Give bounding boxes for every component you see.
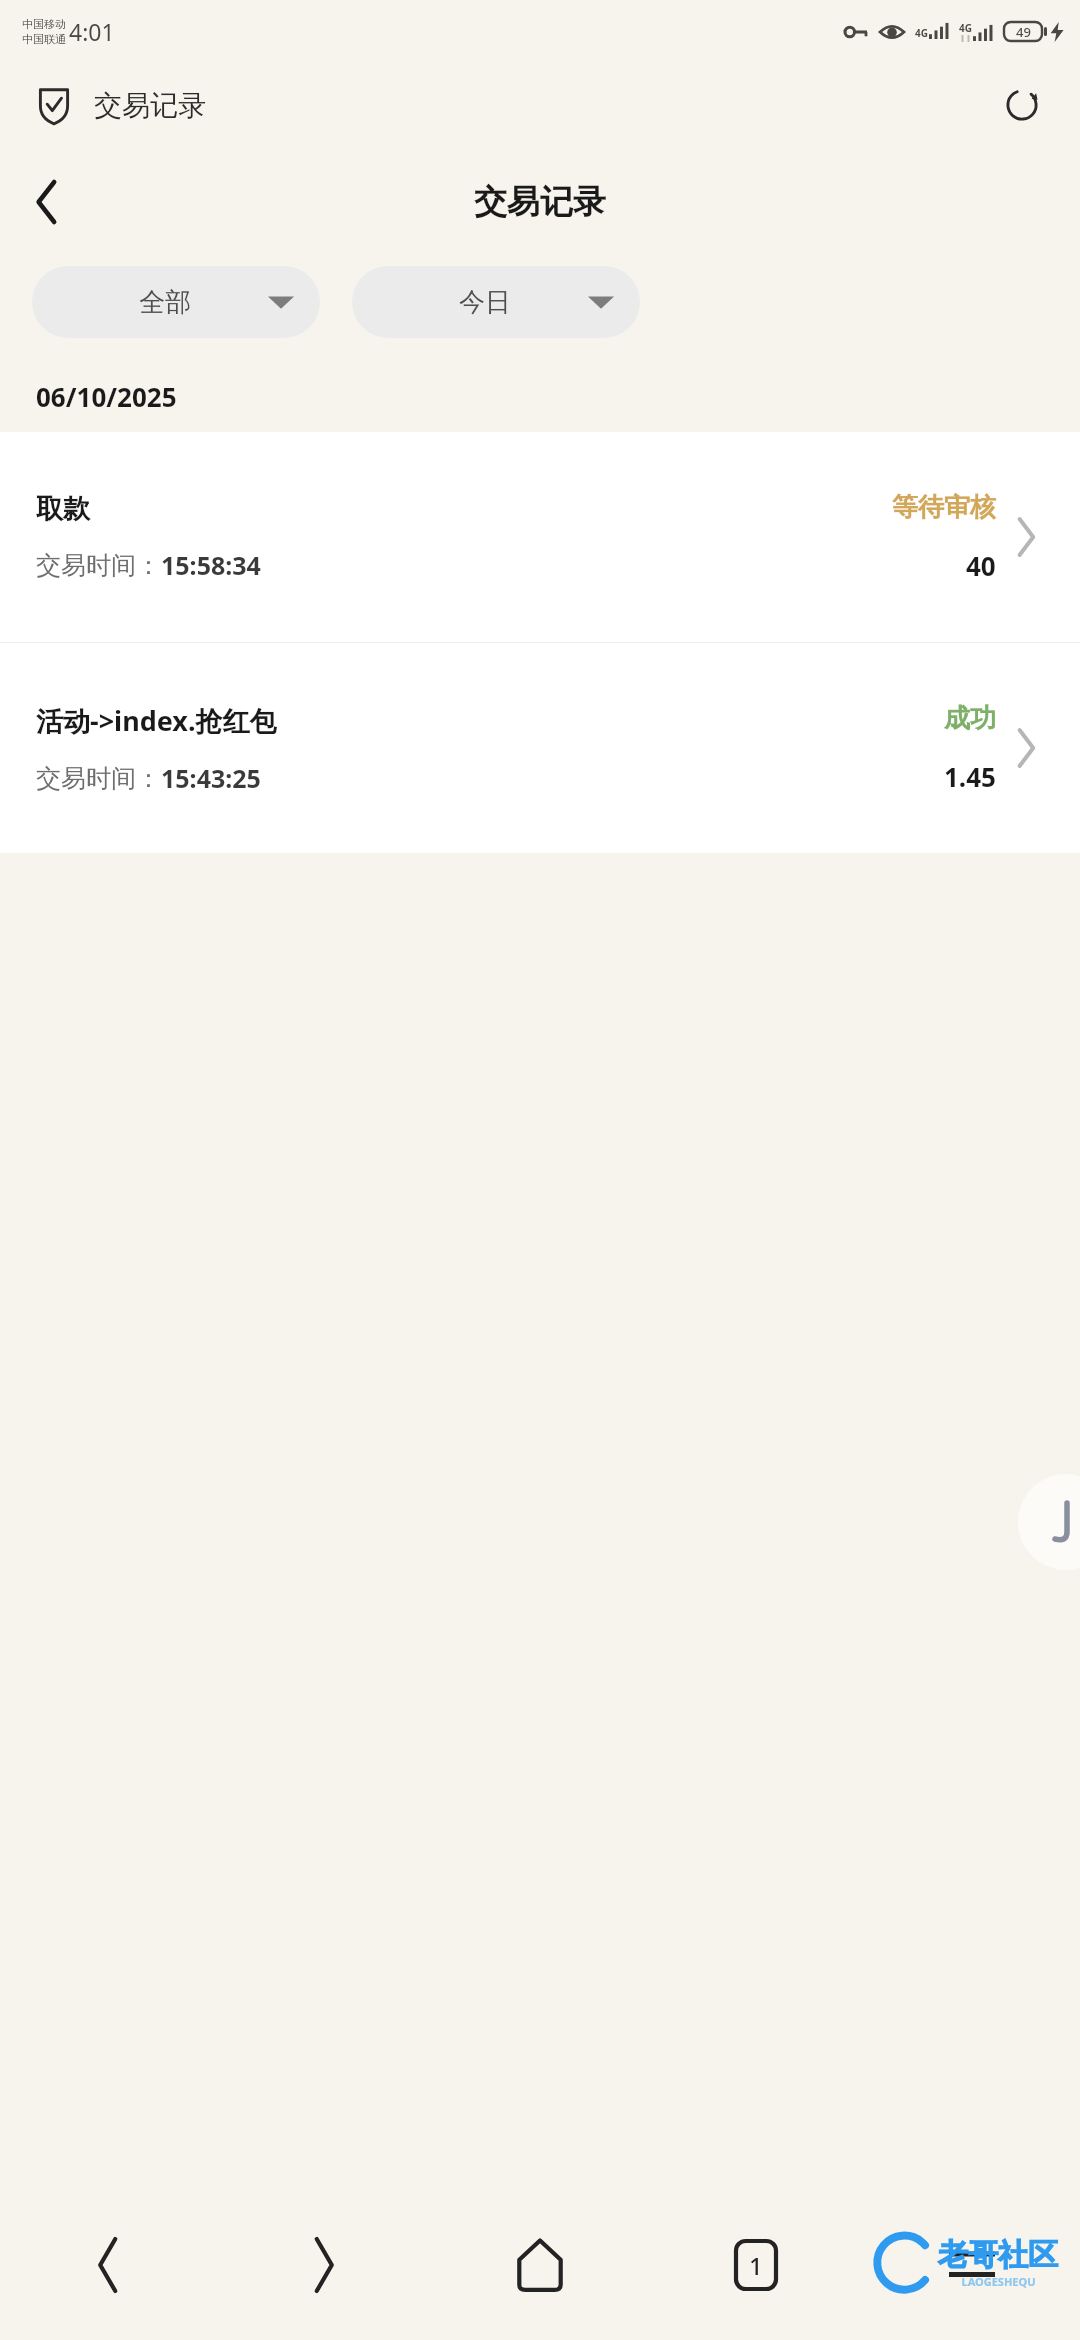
button[interactable]: Tabs xyxy=(648,2210,864,2320)
button[interactable]: Menu xyxy=(864,2210,1080,2320)
staticText: 全部 xyxy=(139,286,191,319)
staticText: 1.45 xyxy=(944,759,996,794)
staticText: 活动->index.抢红包 xyxy=(36,702,277,739)
button[interactable]: Home xyxy=(432,2210,648,2320)
staticText: 49 xyxy=(1016,23,1031,41)
staticText: 4G xyxy=(915,26,928,40)
staticText: 交易记录 xyxy=(474,181,606,223)
staticText: 15:43:25 xyxy=(161,761,261,795)
button[interactable]: 活动->index.抢红包 xyxy=(0,643,1080,853)
staticText: 15:58:34 xyxy=(161,548,261,582)
staticText: 中国联通 xyxy=(22,32,66,46)
staticText: 交易时间： xyxy=(36,763,161,794)
button[interactable]: Refresh xyxy=(996,79,1048,131)
staticText: 交易时间： xyxy=(36,550,161,581)
staticText: LAOGESHEQU xyxy=(961,2274,1036,2289)
button[interactable]: Secure xyxy=(32,83,76,127)
staticText: 交易记录 xyxy=(94,88,206,123)
staticText: 4G xyxy=(959,21,972,35)
staticText: 取款 xyxy=(36,492,90,526)
button[interactable]: 全部 xyxy=(32,266,320,338)
button[interactable]: Assistant xyxy=(1018,1474,1080,1570)
staticText: 06/10/2025 xyxy=(36,379,177,414)
staticText: 等待审核 xyxy=(892,491,996,524)
staticText: 40 xyxy=(966,548,996,583)
staticText: 成功 xyxy=(944,702,996,735)
staticText: 今日 xyxy=(459,286,511,319)
button[interactable]: Forward xyxy=(216,2210,432,2320)
staticText: 4:01 xyxy=(69,16,115,47)
staticText: 中国移动 xyxy=(22,17,66,31)
staticText: 1 xyxy=(749,2249,763,2282)
button[interactable]: Back xyxy=(0,2210,216,2320)
staticText: 老哥社区 xyxy=(938,2236,1058,2274)
button[interactable]: 取款 xyxy=(0,432,1080,642)
button[interactable]: 今日 xyxy=(352,266,640,338)
button[interactable]: Back xyxy=(16,171,78,233)
